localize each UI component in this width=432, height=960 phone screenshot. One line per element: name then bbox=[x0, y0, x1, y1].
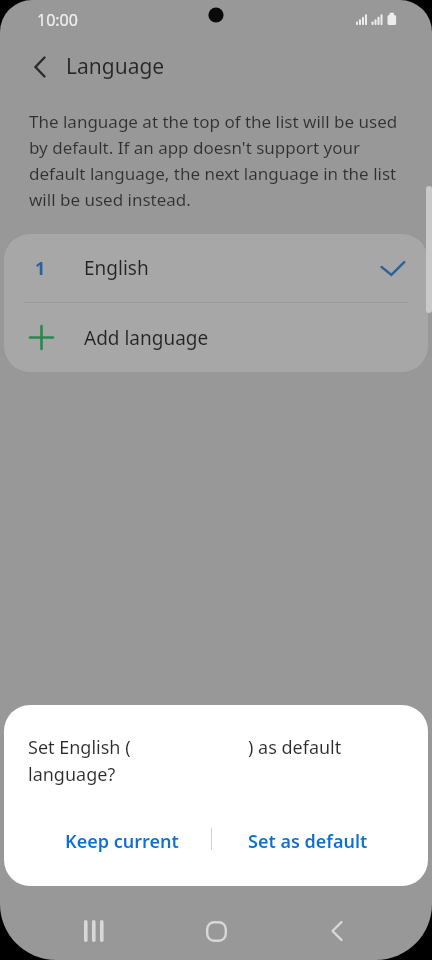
staticText: Set English ( bbox=[28, 735, 131, 760]
button[interactable] bbox=[20, 50, 60, 84]
button[interactable]: 1 bbox=[4, 234, 428, 302]
staticText: English bbox=[84, 255, 149, 281]
staticText: The language at the top of the list will… bbox=[29, 110, 398, 211]
staticText: Language bbox=[66, 52, 165, 81]
staticText: 10:00 bbox=[37, 9, 78, 31]
button[interactable] bbox=[70, 908, 120, 954]
button[interactable]: Keep current bbox=[44, 819, 199, 863]
button[interactable] bbox=[191, 908, 241, 954]
button[interactable] bbox=[312, 908, 362, 954]
staticText: 1 bbox=[35, 256, 46, 281]
staticText: Keep current bbox=[65, 829, 179, 854]
staticText: language? bbox=[28, 762, 116, 787]
button[interactable]: Add language bbox=[4, 303, 428, 372]
staticText: Add language bbox=[84, 325, 209, 351]
staticText: Set as default bbox=[248, 829, 368, 854]
staticText: ) as default bbox=[248, 735, 342, 760]
button[interactable]: Set as default bbox=[230, 819, 385, 863]
